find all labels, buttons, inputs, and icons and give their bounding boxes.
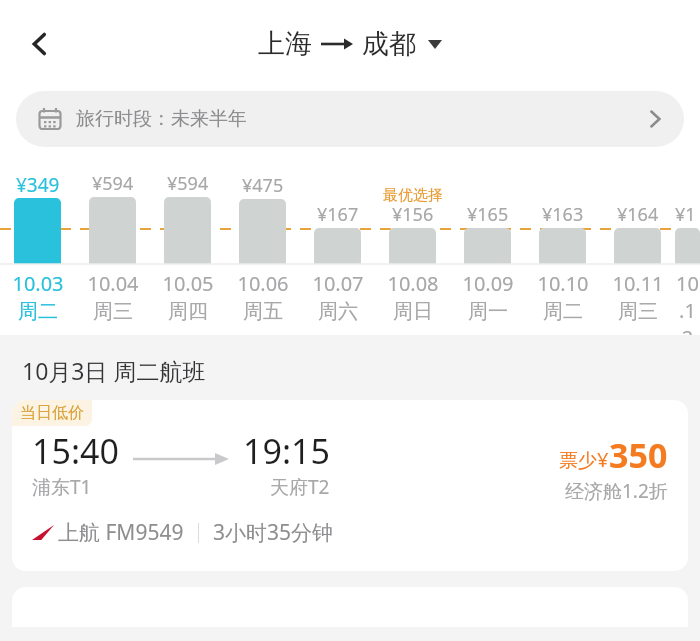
staticText: 经济舱1.2折 [565,478,668,504]
staticText: 最优选择 [383,186,443,205]
staticText: ¥160 [675,202,700,252]
button[interactable]: 当日低价 [12,400,688,571]
staticText: 15:40 [32,428,119,474]
button[interactable]: ¥163 [525,150,600,335]
staticText: 10.07 [312,270,364,297]
staticText: 10.06 [237,270,289,297]
staticText: ¥ [597,446,609,473]
staticText: 3小时35分钟 [213,518,334,547]
button[interactable]: Back [14,18,66,70]
button[interactable]: ¥165 [450,150,525,335]
staticText: ¥475 [242,173,284,198]
staticText: 未来半年 [171,107,247,131]
staticText: ¥156 [392,202,434,227]
button[interactable]: 旅行时段： [16,91,684,147]
button[interactable]: ¥164 [600,150,675,335]
staticText: 10.03 [12,270,64,297]
staticText: 10.04 [87,270,139,297]
staticText: 天府T2 [270,474,330,500]
staticText: 上航 FM9549 [58,518,184,547]
staticText: 票少 [559,449,597,473]
staticText: 当日低价 [20,403,84,423]
staticText: 旅行时段： [76,107,171,131]
staticText: 10.09 [462,270,514,297]
button[interactable]: ¥594 [150,150,225,335]
staticText: 10.11 [612,270,664,297]
staticText: 周六 [318,299,358,324]
staticText: 10月3日 周二航班 [22,355,206,386]
button[interactable]: 最优选择 [375,150,450,335]
staticText: 周五 [243,299,283,324]
staticText: 19:15 [243,428,330,474]
staticText: 周一 [468,299,508,324]
staticText: 浦东T1 [32,474,92,500]
staticText: 周四 [168,299,208,324]
staticText: 周三 [618,299,658,324]
staticText: 10.05 [162,270,214,297]
staticText: ¥594 [92,171,134,196]
staticText: ¥594 [167,171,209,196]
staticText: 10.12 [675,270,700,335]
staticText: 周二 [543,299,583,324]
button[interactable]: ¥349 [0,150,75,335]
staticText: 周日 [393,299,433,324]
staticText: ¥163 [542,202,584,227]
staticText: 10.08 [387,270,439,297]
staticText: 上海 [258,27,312,61]
button[interactable]: ¥475 [225,150,300,335]
staticText: ¥165 [467,202,509,227]
staticText: 成都 [362,27,416,61]
staticText: ¥164 [617,202,659,227]
staticText: ¥167 [317,202,359,227]
staticText: 周三 [93,299,133,324]
button[interactable]: ¥594 [75,150,150,335]
staticText: 10.10 [537,270,589,297]
button[interactable]: ¥160 [675,150,700,335]
button[interactable]: ¥167 [300,150,375,335]
button[interactable]: 上海 [258,27,442,61]
staticText: 周二 [18,299,58,324]
staticText: 350 [609,432,668,478]
staticText: ¥349 [16,172,60,198]
